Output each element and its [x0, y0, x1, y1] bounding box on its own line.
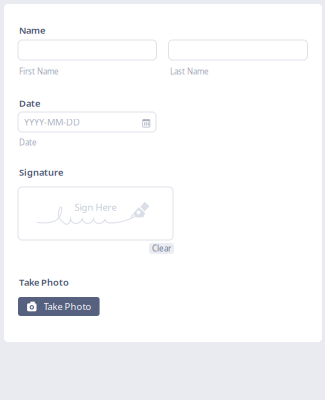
button[interactable] — [168, 40, 307, 60]
staticText: YYYY-MM-DD — [24, 116, 80, 128]
button[interactable]: Sign Here — [18, 187, 173, 240]
button[interactable]: Clear — [149, 243, 174, 254]
staticText: Take Photo — [44, 300, 92, 313]
staticText: First Name — [19, 66, 59, 77]
staticText: Signature — [19, 166, 63, 178]
staticText: Date — [19, 137, 37, 148]
button[interactable]: Take Photo — [18, 297, 100, 316]
staticText: Date — [19, 97, 40, 109]
button[interactable] — [18, 40, 156, 60]
staticText: Sign Here — [74, 201, 116, 213]
button[interactable]: YYYY-MM-DD — [18, 112, 156, 132]
staticText: Name — [19, 24, 45, 36]
staticText: Last Name — [170, 66, 209, 77]
staticText: Take Photo — [19, 276, 69, 288]
staticText: Clear — [152, 243, 171, 254]
